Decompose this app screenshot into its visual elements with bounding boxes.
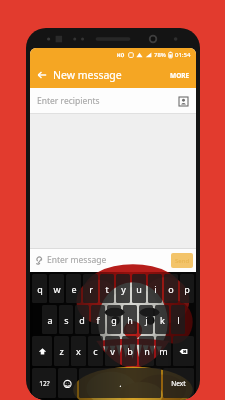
button[interactable]: i xyxy=(148,274,162,303)
staticText: Next xyxy=(171,379,186,388)
button[interactable]: m xyxy=(156,336,171,366)
button[interactable]: w xyxy=(49,274,64,303)
staticText: q xyxy=(37,283,43,295)
staticText: i xyxy=(154,283,157,295)
staticText: m xyxy=(159,345,168,357)
button[interactable]: p xyxy=(180,274,194,303)
button[interactable]: Attach xyxy=(33,254,46,267)
staticText: z xyxy=(59,345,64,357)
staticText: f xyxy=(96,314,100,326)
button[interactable]: f xyxy=(91,305,105,334)
button[interactable]: Back xyxy=(34,67,50,83)
button[interactable]: u xyxy=(132,274,146,303)
staticText: Enter message xyxy=(47,254,107,266)
staticText: t xyxy=(105,283,109,295)
button[interactable]: v xyxy=(105,336,120,366)
staticText: e xyxy=(71,283,77,295)
button[interactable]: . xyxy=(79,368,161,398)
staticText: 12? xyxy=(39,379,50,388)
staticText: o xyxy=(168,283,174,295)
button[interactable]: c xyxy=(88,336,103,366)
button[interactable]: g xyxy=(107,305,121,334)
staticText: Send xyxy=(175,257,190,265)
staticText: y xyxy=(121,283,126,295)
staticText: s xyxy=(64,314,69,326)
staticText: g xyxy=(111,314,117,326)
button[interactable]: j xyxy=(139,305,153,334)
button[interactable]: d xyxy=(75,305,89,334)
staticText: MORE xyxy=(170,71,190,80)
staticText: v xyxy=(110,345,115,357)
staticText: w xyxy=(53,283,61,295)
button[interactable]: s xyxy=(59,305,73,334)
staticText: d xyxy=(79,314,85,326)
staticText: n xyxy=(144,345,150,357)
button[interactable]: n xyxy=(139,336,154,366)
button[interactable]: k xyxy=(155,305,169,334)
button[interactable]: 12? xyxy=(32,368,56,398)
button[interactable]: t xyxy=(100,274,114,303)
button[interactable]: z xyxy=(54,336,69,366)
button[interactable]: e xyxy=(66,274,81,303)
button[interactable]: a xyxy=(42,305,57,334)
button[interactable]: Enter recipients xyxy=(30,88,196,114)
button[interactable]: q xyxy=(32,274,47,303)
button[interactable]: y xyxy=(116,274,130,303)
button[interactable]: MORE xyxy=(167,68,193,83)
staticText: Enter recipients xyxy=(37,95,100,107)
staticText: l xyxy=(177,314,180,326)
button[interactable]: Next xyxy=(163,368,194,398)
staticText: . xyxy=(119,377,122,389)
staticText: k xyxy=(160,314,165,326)
staticText: h xyxy=(127,314,133,326)
staticText: r xyxy=(89,283,93,295)
staticText: New message xyxy=(53,68,122,82)
button[interactable]: Backspace xyxy=(173,336,194,366)
button[interactable]: h xyxy=(123,305,137,334)
button[interactable]: Send xyxy=(171,253,193,268)
button[interactable]: Emoji xyxy=(58,368,77,398)
button[interactable]: o xyxy=(164,274,178,303)
button[interactable]: l xyxy=(171,305,185,334)
staticText: x xyxy=(76,345,81,357)
staticText: a xyxy=(47,314,53,326)
button[interactable]: Shift xyxy=(32,336,52,366)
staticText: 78% xyxy=(154,51,166,59)
staticText: p xyxy=(184,283,190,295)
staticText: u xyxy=(136,283,142,295)
staticText: j xyxy=(145,314,148,326)
staticText: b xyxy=(127,345,133,357)
staticText: 01:54 xyxy=(175,51,191,59)
button[interactable]: Contacts xyxy=(176,94,190,108)
button[interactable]: b xyxy=(122,336,137,366)
staticText: c xyxy=(93,345,98,357)
button[interactable]: x xyxy=(71,336,86,366)
button[interactable]: r xyxy=(83,274,98,303)
